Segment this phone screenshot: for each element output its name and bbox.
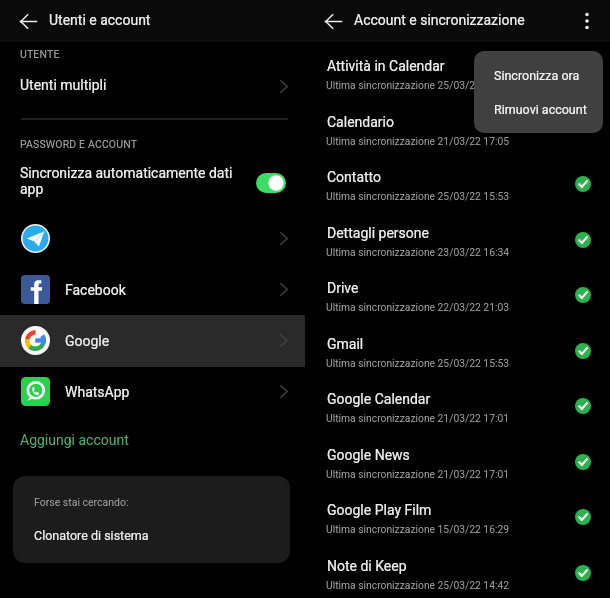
button[interactable]: Gmail: [305, 326, 610, 382]
staticText: Ultima sincronizzazione 25/03/22 14:42: [326, 579, 510, 591]
staticText: Ultima sincronizzazione 21/03/22 17:05: [326, 135, 510, 147]
staticText: Note di Keep: [327, 558, 407, 574]
button[interactable]: [0, 213, 305, 264]
button[interactable]: Facebook: [0, 264, 305, 315]
staticText: Account e sincronizzazione: [354, 12, 525, 28]
staticText: Ultima sincronizzazione 25/03/22 15:53: [326, 79, 510, 91]
button[interactable]: Sincronizza automaticamente dati app: [0, 157, 305, 207]
staticText: Rimuovi account: [494, 102, 587, 117]
staticText: Ultima sincronizzazione 25/03/22 15:53: [326, 357, 510, 369]
button[interactable]: Dettagli persone: [305, 215, 610, 271]
staticText: Facebook: [65, 282, 126, 298]
staticText: Ultima sincronizzazione 23/03/22 16:34: [326, 246, 510, 258]
button[interactable]: Forse stai cercando:: [13, 476, 290, 563]
button[interactable]: Google Play Film: [305, 492, 610, 548]
staticText: Utenti multipli: [20, 77, 107, 93]
staticText: Ultima sincronizzazione 25/03/22 15:53: [326, 190, 510, 202]
button[interactable]: Calendario: [305, 104, 610, 160]
button[interactable]: WhatsApp: [0, 366, 305, 417]
button[interactable]: Google News: [305, 437, 610, 493]
staticText: Gmail: [327, 336, 364, 352]
staticText: Sincronizza automaticamente dati app: [20, 165, 233, 197]
button[interactable]: Drive: [305, 270, 610, 326]
button[interactable]: Aggiungi account: [0, 424, 305, 456]
button[interactable]: Google: [0, 315, 305, 366]
staticText: Dettagli persone: [327, 225, 429, 241]
button[interactable]: Sincronizza ora: [474, 51, 603, 92]
staticText: Sincronizza ora: [494, 68, 580, 83]
button[interactable]: Google Calendar: [305, 381, 610, 437]
button[interactable]: Attività in Calendar: [305, 48, 610, 104]
staticText: Google Calendar: [327, 391, 431, 407]
button[interactable]: More options: [574, 8, 600, 34]
staticText: Google: [65, 333, 110, 349]
button[interactable]: Utenti multipli: [0, 66, 305, 108]
button[interactable]: Contatto: [305, 159, 610, 215]
staticText: Ultima sincronizzazione 21/03/22 17:01: [326, 412, 510, 424]
staticText: Aggiungi account: [20, 432, 129, 448]
staticText: Ultima sincronizzazione 22/03/22 21:03: [326, 301, 510, 313]
staticText: Google News: [327, 447, 410, 463]
staticText: Ultima sincronizzazione 21/03/22 17:01: [326, 468, 510, 480]
button[interactable]: Rimuovi account: [474, 92, 603, 133]
staticText: Google Play Film: [327, 502, 432, 518]
staticText: PASSWORD E ACCOUNT: [20, 138, 138, 150]
staticText: Drive: [327, 280, 359, 296]
button[interactable]: Back: [322, 10, 344, 32]
staticText: Contatto: [327, 169, 382, 185]
staticText: Clonatore di sistema: [34, 528, 149, 543]
button[interactable]: Back: [17, 10, 39, 32]
staticText: Calendario: [327, 114, 394, 130]
staticText: Attività in Calendar: [327, 58, 445, 74]
staticText: Forse stai cercando:: [34, 496, 129, 508]
staticText: Ultima sincronizzazione 15/03/22 16:29: [326, 523, 510, 535]
staticText: UTENTE: [20, 48, 60, 60]
staticText: Utenti e account: [49, 12, 151, 28]
staticText: WhatsApp: [65, 384, 130, 400]
button[interactable]: Note di Keep: [305, 548, 610, 598]
